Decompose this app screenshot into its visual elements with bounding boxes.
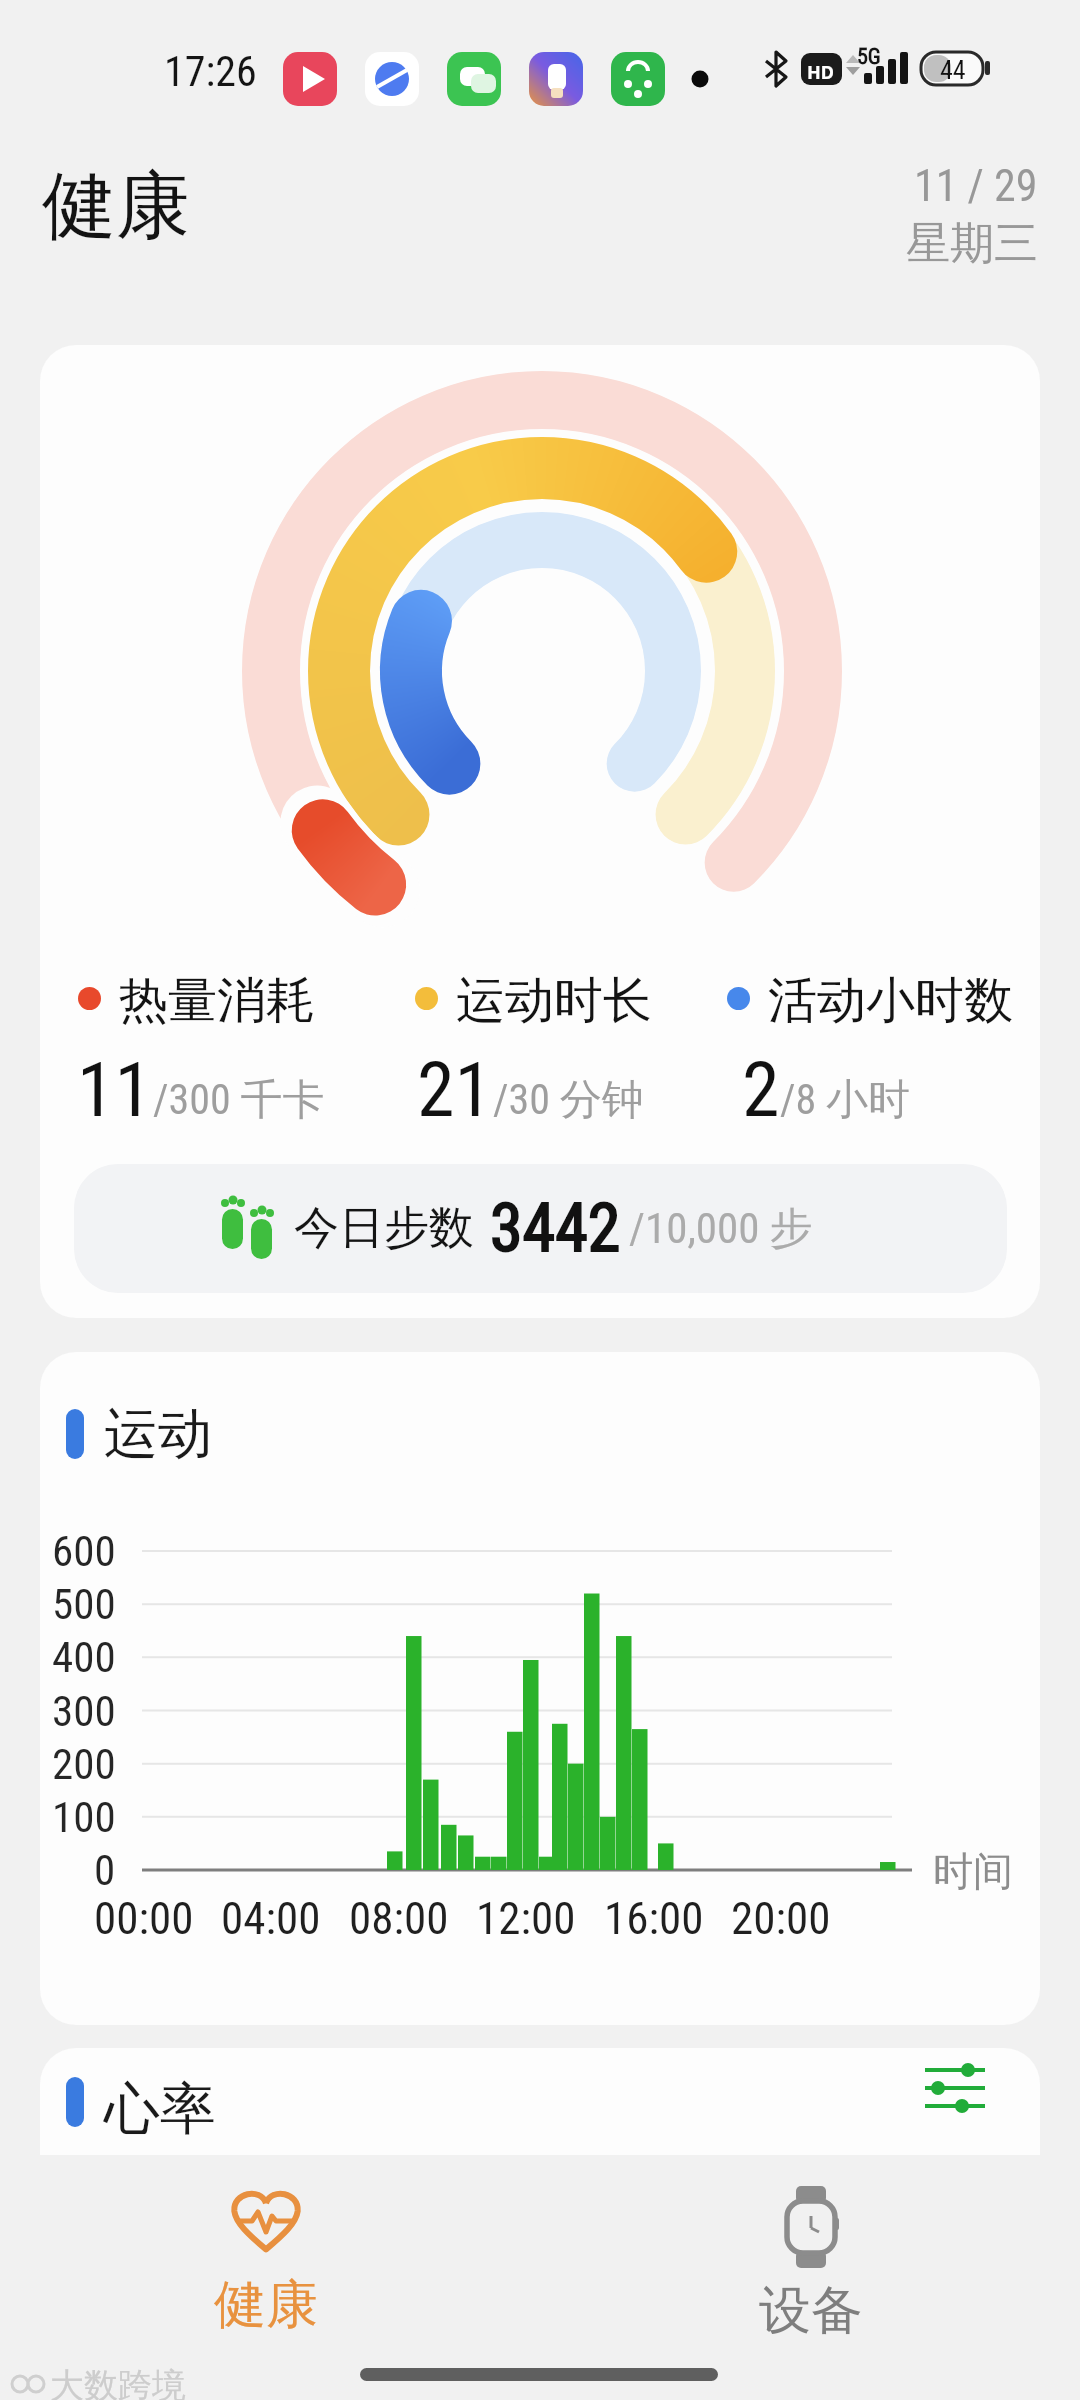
- staticText: 08:00: [349, 1892, 449, 1944]
- staticText: 热量消耗: [119, 970, 315, 1026]
- staticText: 健康: [214, 2272, 318, 2336]
- staticText: 12:00: [476, 1892, 576, 1944]
- staticText: 11 / 29: [914, 160, 1038, 212]
- staticText: 20:00: [731, 1892, 831, 1944]
- staticText: 44: [940, 55, 966, 85]
- staticText: 21: [417, 1045, 493, 1134]
- button[interactable]: 健康: [188, 2186, 343, 2336]
- staticText: 100: [52, 1792, 116, 1842]
- staticText: /30 分钟: [493, 1074, 644, 1127]
- staticText: 今日步数: [294, 1200, 474, 1257]
- staticText: 11: [77, 1045, 153, 1134]
- staticText: 16:00: [604, 1892, 704, 1944]
- staticText: 600: [52, 1526, 116, 1576]
- button[interactable]: [920, 2062, 990, 2118]
- staticText: /300 千卡: [153, 1074, 325, 1127]
- staticText: 2: [742, 1045, 780, 1134]
- staticText: 04:00: [221, 1892, 321, 1944]
- staticText: 17:26: [164, 47, 257, 96]
- staticText: 0: [94, 1845, 116, 1895]
- button[interactable]: 运动: [40, 1352, 1040, 2025]
- staticText: 00:00: [94, 1892, 194, 1944]
- staticText: /10,000 步: [629, 1202, 813, 1256]
- staticText: 运动时长: [456, 970, 652, 1026]
- staticText: 时间: [933, 1846, 1013, 1896]
- staticText: 500: [52, 1579, 116, 1629]
- staticText: 400: [52, 1632, 116, 1682]
- button[interactable]: 设备: [733, 2186, 888, 2336]
- staticText: 健康: [42, 160, 190, 253]
- staticText: 活动小时数: [768, 970, 1013, 1026]
- staticText: /8 小时: [780, 1074, 910, 1127]
- staticText: 200: [52, 1739, 116, 1789]
- staticText: 运动: [104, 1400, 212, 1468]
- staticText: 设备: [759, 2278, 863, 2336]
- staticText: 5G: [857, 44, 881, 70]
- staticText: 心率: [104, 2074, 216, 2145]
- button[interactable]: 心率: [40, 2048, 1040, 2155]
- staticText: HD: [807, 60, 834, 85]
- button[interactable]: 今日步数: [74, 1164, 1007, 1293]
- staticText: 大数跨境: [50, 2364, 186, 2400]
- staticText: 3442: [490, 1190, 621, 1267]
- staticText: 300: [52, 1686, 116, 1736]
- staticText: 星期三: [906, 216, 1038, 271]
